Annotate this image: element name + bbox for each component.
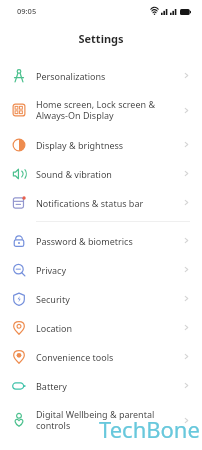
staticText: TechBone <box>99 414 200 444</box>
button[interactable]: Battery <box>0 371 202 400</box>
staticText: 09:05 <box>17 6 37 16</box>
staticText: Home screen, Lock screen & Always-On Dis… <box>36 98 182 122</box>
button[interactable]: Convenience tools <box>0 342 202 371</box>
button[interactable]: Location <box>0 313 202 342</box>
button[interactable]: Security <box>0 284 202 313</box>
staticText: Security <box>36 293 182 305</box>
staticText: Sound & vibration <box>36 168 182 180</box>
staticText: Convenience tools <box>36 351 182 363</box>
staticText: Settings <box>78 31 124 46</box>
button[interactable]: Notifications & status bar <box>0 188 202 217</box>
staticText: Display & brightness <box>36 139 182 151</box>
staticText: Password & biometrics <box>36 235 182 247</box>
staticText: Location <box>36 322 182 334</box>
staticText: Notifications & status bar <box>36 197 182 209</box>
staticText: Digital Wellbeing & parental controls <box>36 408 182 432</box>
button[interactable]: Privacy <box>0 255 202 284</box>
staticText: Battery <box>36 380 182 392</box>
staticText: Privacy <box>36 264 182 276</box>
button[interactable]: Digital Wellbeing & parental controls <box>0 400 202 440</box>
staticText: Personalizations <box>36 70 182 82</box>
button[interactable]: Password & biometrics <box>0 226 202 255</box>
button[interactable]: Personalizations <box>0 61 202 90</box>
button[interactable]: Home screen, Lock screen & Always-On Dis… <box>0 90 202 130</box>
button[interactable]: Display & brightness <box>0 130 202 159</box>
button[interactable]: Sound & vibration <box>0 159 202 188</box>
